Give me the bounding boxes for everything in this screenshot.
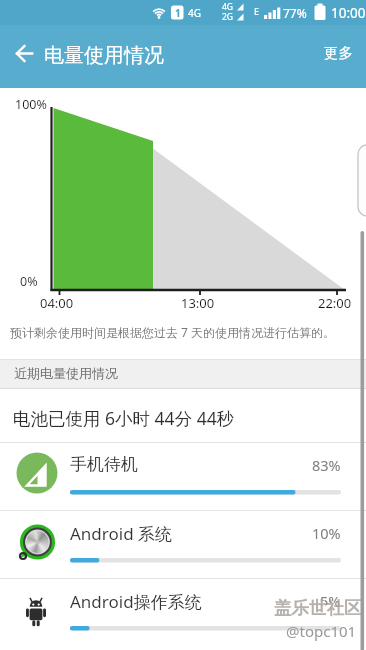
staticText: 0% — [20, 273, 38, 290]
staticText: 预计剩余使用时间是根据您过去 7 天的使用情况进行估算的。 — [10, 324, 336, 340]
staticText: 电量使用情况 — [44, 43, 164, 68]
staticText: 77% — [283, 5, 307, 21]
button[interactable] — [7, 38, 42, 68]
staticText: 1 — [175, 6, 181, 20]
staticText: 4G — [188, 6, 201, 20]
staticText: 83% — [312, 455, 341, 475]
staticText: 5% — [320, 591, 341, 611]
button[interactable]: Android 系统 — [0, 511, 366, 579]
staticText: 盖乐世社区 — [274, 597, 362, 619]
staticText: E — [254, 5, 260, 17]
staticText: 100% — [15, 96, 47, 113]
staticText: 盖乐世社区 — [276, 599, 364, 621]
staticText: 近期电量使用情况 — [14, 365, 118, 381]
button[interactable]: 手机待机 — [0, 443, 366, 511]
staticText: 2G — [222, 11, 234, 23]
staticText: 22:00 — [318, 294, 352, 312]
button[interactable]: Android操作系统 — [0, 579, 366, 647]
staticText: 10:00 — [331, 4, 366, 22]
staticText: 13:00 — [181, 294, 215, 312]
staticText: Android 系统 — [70, 522, 173, 545]
staticText: 电池已使用 6小时 44分 44秒 — [13, 406, 235, 430]
staticText: @topc101 — [286, 621, 357, 641]
button[interactable]: 更多 — [316, 35, 360, 71]
staticText: 04:00 — [40, 294, 74, 312]
staticText: Android操作系统 — [70, 590, 202, 613]
staticText: 10% — [312, 523, 341, 543]
staticText: 4G — [222, 1, 234, 13]
staticText: 更多 — [324, 44, 353, 62]
staticText: 手机待机 — [70, 454, 138, 475]
